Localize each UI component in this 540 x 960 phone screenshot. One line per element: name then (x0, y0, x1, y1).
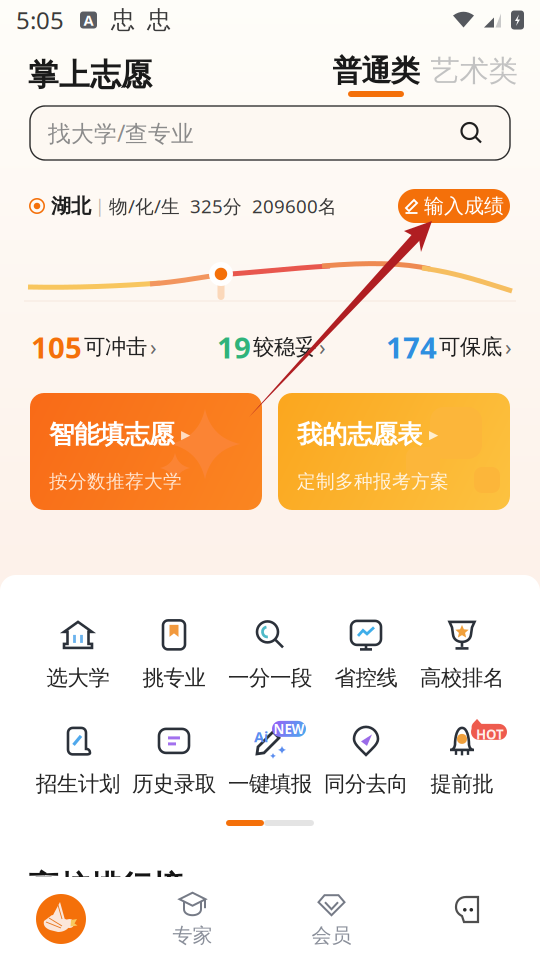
staticText: 105 (31, 327, 82, 366)
staticText: 忠 (147, 5, 171, 35)
staticText: › (319, 333, 326, 361)
staticText: ▶ (429, 428, 438, 441)
button[interactable]: 高校排名 (414, 618, 510, 690)
staticText: 可冲击 (84, 334, 147, 360)
button[interactable]: 智能填志愿 (30, 393, 262, 510)
staticText: | (95, 194, 105, 217)
button[interactable]: 挑专业 (126, 618, 222, 690)
staticText: › (150, 333, 157, 361)
button[interactable]: 普通类 (338, 53, 414, 97)
button[interactable]: 105 (31, 327, 157, 366)
button[interactable]: Ai (222, 724, 318, 796)
staticText: 招生计划 (36, 771, 120, 797)
staticText: 定制多种报考方案 (297, 470, 449, 493)
button[interactable]: 会员 (262, 877, 401, 960)
staticText: 输入成绩 (424, 194, 504, 218)
staticText: 可保底 (439, 334, 502, 360)
staticText: 湖北 (51, 194, 91, 218)
staticText: 按分数推荐大学 (49, 470, 182, 493)
staticText: 一键填报 (228, 771, 312, 797)
staticText: 同分去向 (324, 771, 408, 797)
button[interactable]: 一分一段 (222, 618, 318, 690)
staticText: 5:05 (16, 4, 64, 36)
staticText: 选大学 (46, 665, 109, 691)
staticText: 艺术类 (430, 53, 517, 89)
staticText: 较稳妥 (253, 334, 316, 360)
button[interactable]: 174 (386, 327, 512, 366)
staticText: 普通类 (332, 53, 419, 89)
staticText: A (83, 10, 93, 30)
button[interactable]: 同分去向 (318, 724, 414, 796)
staticText: 提前批 (430, 771, 493, 797)
staticText: 专家 (172, 923, 212, 948)
button[interactable]: 我的志愿表 (278, 393, 510, 510)
staticText: › (505, 333, 512, 361)
button[interactable]: 找大学/查专业 (30, 106, 510, 160)
staticText: 找大学/查专业 (48, 118, 194, 148)
button[interactable]: 客服 (401, 877, 540, 960)
staticText: ▶ (181, 428, 190, 441)
button[interactable]: 艺术类 (436, 53, 512, 97)
button[interactable]: 19 (217, 327, 326, 366)
button[interactable]: 历史录取 (126, 724, 222, 796)
staticText: 一分一段 (228, 665, 312, 691)
button[interactable]: 招生计划 (30, 724, 126, 796)
staticText: HOT (476, 725, 504, 743)
staticText: 掌上志愿 (28, 56, 152, 94)
staticText: NEW (273, 720, 304, 738)
staticText: 174 (386, 327, 437, 366)
button[interactable]: HOT (414, 724, 510, 796)
staticText: 省控线 (334, 665, 397, 691)
staticText: 智能填志愿 (49, 419, 174, 450)
button[interactable]: 省控线 (318, 618, 414, 690)
button[interactable]: 输入成绩 (398, 189, 510, 223)
button[interactable]: 首页 (0, 877, 123, 960)
staticText: 物/化/生 325分 209600名 (109, 194, 337, 218)
button[interactable]: 专家 (123, 877, 262, 960)
staticText: Ai (254, 727, 268, 746)
button[interactable]: 选大学 (30, 618, 126, 690)
staticText: 高校排行榜 (28, 868, 183, 906)
staticText: 会员 (311, 923, 351, 948)
staticText: 历史录取 (132, 771, 216, 797)
staticText: 高校排名 (420, 665, 504, 691)
staticText: 我的志愿表 (297, 419, 422, 450)
staticText: 19 (217, 327, 251, 366)
staticText: 挑专业 (142, 665, 205, 691)
staticText: 忠 (111, 5, 135, 35)
